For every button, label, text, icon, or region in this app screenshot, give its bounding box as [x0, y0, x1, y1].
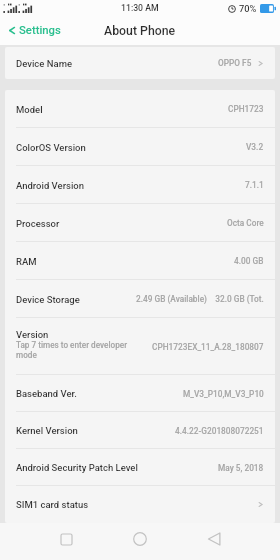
- staticText: V3.2: [246, 142, 264, 152]
- staticText: 7.1.1: [245, 180, 264, 190]
- button[interactable]: Recents: [52, 525, 80, 553]
- button[interactable]: Home: [126, 525, 154, 553]
- staticText: 70%: [239, 3, 257, 14]
- staticText: Model: [16, 104, 43, 115]
- staticText: Android Security Patch Level: [16, 462, 138, 473]
- button[interactable]: Model: [5, 90, 275, 128]
- staticText: Android Version: [16, 180, 84, 191]
- button[interactable]: Android Version: [5, 166, 275, 204]
- staticText: 4.4.22-G201808072251: [175, 426, 264, 436]
- button[interactable]: Android Security Patch Level: [5, 449, 275, 486]
- staticText: CPH1723EX_11_A.28_180807: [152, 342, 264, 352]
- staticText: Settings: [19, 24, 61, 37]
- button[interactable]: Device Storage: [5, 280, 275, 318]
- staticText: Kernel Version: [16, 425, 78, 436]
- staticText: OPPO F5: [218, 58, 252, 68]
- button[interactable]: ColorOS Version: [5, 128, 275, 166]
- staticText: Octa Core: [227, 218, 264, 228]
- button[interactable]: Device Name: [5, 47, 275, 79]
- staticText: Device Name: [16, 58, 72, 69]
- staticText: 4.00 GB: [234, 256, 264, 266]
- button[interactable]: Processor: [5, 204, 275, 242]
- staticText: May 5, 2018: [218, 463, 264, 473]
- button[interactable]: Version: [5, 318, 275, 375]
- staticText: Processor: [16, 218, 60, 229]
- staticText: 11:30 AM: [121, 3, 159, 13]
- staticText: About Phone: [104, 24, 176, 38]
- staticText: M_V3_P10,M_V3_P10: [183, 389, 264, 399]
- staticText: CPH1723: [228, 104, 264, 114]
- button[interactable]: Baseband Ver.: [5, 375, 275, 412]
- staticText: SIM1 card status: [16, 499, 89, 510]
- button[interactable]: Settings: [0, 24, 98, 37]
- button[interactable]: SIM1 card status: [5, 486, 275, 523]
- staticText: Tap 7 times to enter developer mode: [16, 340, 145, 360]
- staticText: Baseband Ver.: [16, 388, 77, 399]
- button[interactable]: Kernel Version: [5, 412, 275, 449]
- button[interactable]: Back: [200, 525, 228, 553]
- staticText: 2.49 GB (Available) 32.0 GB (Tot.: [136, 294, 264, 304]
- staticText: RAM: [16, 256, 37, 267]
- staticText: ColorOS Version: [16, 142, 86, 153]
- button[interactable]: RAM: [5, 242, 275, 280]
- staticText: Version: [16, 329, 49, 340]
- staticText: Device Storage: [16, 294, 80, 305]
